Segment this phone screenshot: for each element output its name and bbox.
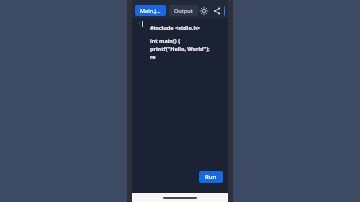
button[interactable]: Run — [199, 171, 223, 183]
staticText: 1 — [138, 21, 141, 26]
staticText: Run — [205, 173, 217, 181]
button[interactable]: Main.j… — [135, 5, 166, 16]
button[interactable]: Share — [211, 5, 222, 16]
staticText: printf("Hello, World"); — [150, 45, 210, 52]
staticText: Main.j… — [140, 7, 161, 14]
button[interactable]: Output — [169, 5, 198, 16]
button[interactable]: Run code — [224, 6, 225, 16]
staticText: #include <stdio.h> — [150, 24, 201, 31]
button[interactable]: Toggle theme brightness — [198, 5, 209, 16]
staticText: int main() { — [150, 37, 181, 44]
staticText: Output — [174, 7, 193, 14]
staticText: re — [150, 53, 156, 60]
